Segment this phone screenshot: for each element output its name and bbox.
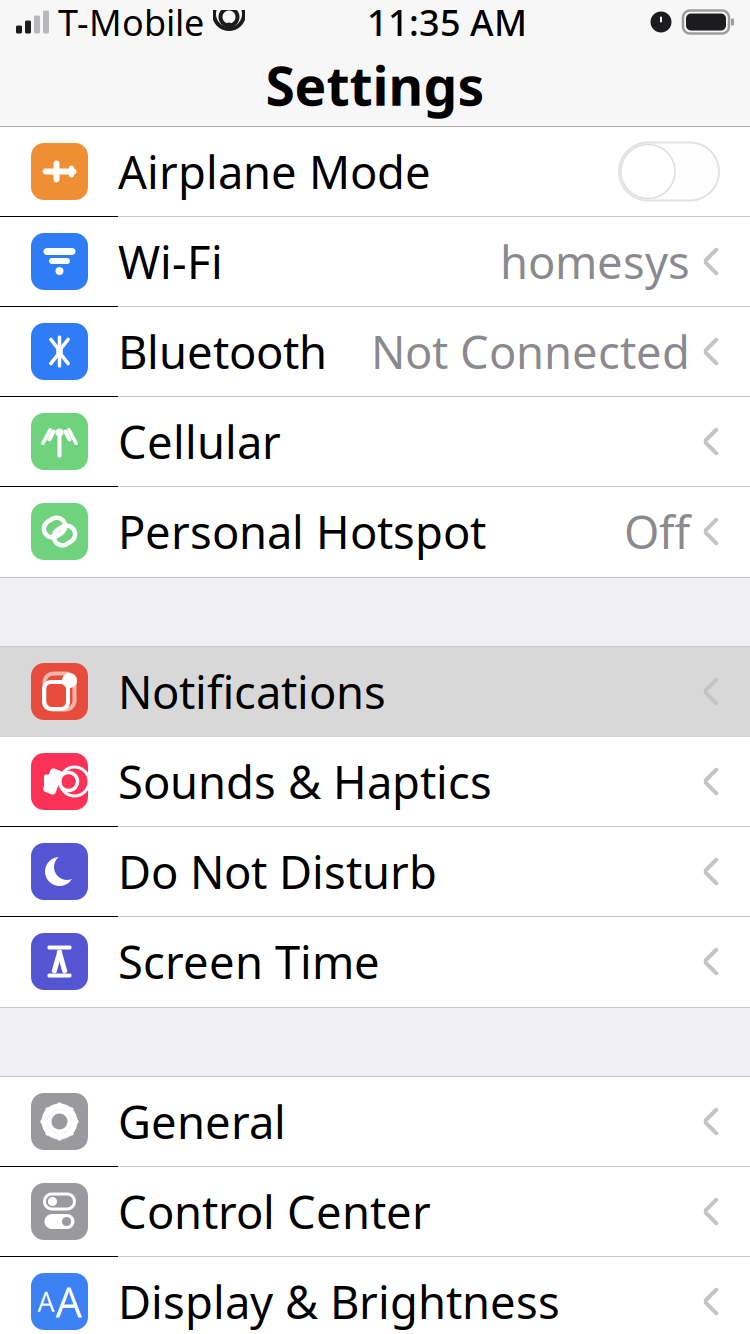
staticText: Off [624,501,690,562]
staticText: Notifications [118,661,386,722]
staticText: Not Connected [371,321,690,382]
button[interactable]: Do Not Disturb [0,827,750,917]
staticText: General [118,1091,286,1152]
staticText: Wi-Fi [118,231,223,292]
button[interactable]: Notifications [0,647,750,737]
staticText: Personal Hotspot [118,501,486,562]
staticText: 11:35 AM [367,0,527,46]
staticText: Screen Time [118,931,380,992]
button[interactable]: General [0,1077,750,1167]
staticText: Settings [265,50,484,120]
button[interactable]: Bluetooth [0,307,750,397]
staticText: T-Mobile [58,0,204,46]
staticText: Do Not Disturb [118,841,437,902]
staticText: A [37,1284,54,1319]
staticText: Airplane Mode [118,141,431,202]
staticText: A [55,1274,81,1329]
staticText: homesys [500,231,690,292]
button[interactable]: A [0,1257,750,1334]
button[interactable]: Wi-Fi [0,217,750,307]
staticText: Display & Brightness [118,1271,560,1332]
button[interactable]: Screen Time [0,917,750,1007]
button[interactable]: Airplane Mode [0,127,750,217]
staticText: Bluetooth [118,321,327,382]
staticText: Cellular [118,411,281,472]
button[interactable]: Personal Hotspot [0,487,750,577]
staticText: Control Center [118,1181,431,1242]
button[interactable]: Cellular [0,397,750,487]
button[interactable]: Control Center [0,1167,750,1257]
button[interactable]: Sounds & Haptics [0,737,750,827]
staticText: Sounds & Haptics [118,751,492,812]
